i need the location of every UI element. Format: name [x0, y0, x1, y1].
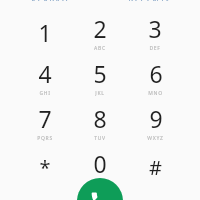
button[interactable]: Key 6: [128, 58, 182, 96]
button[interactable]: Key 7: [18, 103, 72, 141]
button[interactable]: Key #: [128, 148, 182, 186]
staticText: 8: [93, 103, 107, 134]
staticText: DEF: [149, 45, 161, 51]
button[interactable]: Key 5: [73, 58, 127, 96]
button[interactable]: Key 8: [73, 103, 127, 141]
staticText: JKL: [95, 90, 105, 96]
staticText: RECENTS: [128, 0, 172, 1]
staticText: TUV: [94, 135, 106, 141]
button[interactable]: KEYPAD: [0, 0, 100, 5]
button[interactable]: Call: [77, 178, 123, 200]
button[interactable]: Key *: [18, 148, 72, 186]
staticText: ABC: [94, 45, 106, 51]
staticText: 5: [93, 58, 107, 89]
staticText: PQRS: [37, 135, 53, 141]
button[interactable]: Key 2: [73, 13, 127, 51]
staticText: #: [149, 154, 162, 181]
button[interactable]: Key 0: [73, 148, 127, 186]
staticText: GHI: [39, 90, 51, 96]
staticText: 4: [38, 58, 52, 89]
staticText: MNO: [148, 90, 163, 96]
button[interactable]: RECENTS: [100, 0, 200, 5]
staticText: 2: [93, 13, 107, 44]
staticText: 3: [148, 13, 162, 44]
staticText: *: [39, 154, 51, 181]
staticText: 1: [38, 17, 52, 48]
staticText: KEYPAD: [31, 0, 69, 1]
button[interactable]: Key 9: [128, 103, 182, 141]
staticText: 7: [38, 103, 52, 134]
button[interactable]: Key 3: [128, 13, 182, 51]
staticText: 0: [93, 148, 107, 179]
button[interactable]: Key 1: [18, 13, 72, 51]
staticText: 9: [149, 103, 163, 134]
staticText: WXYZ: [147, 135, 164, 141]
staticText: 6: [149, 58, 163, 89]
button[interactable]: Key 4: [18, 58, 72, 96]
